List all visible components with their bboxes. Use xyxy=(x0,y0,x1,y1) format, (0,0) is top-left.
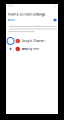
button[interactable]: Samsung Free xyxy=(6,45,58,53)
button[interactable]: Google Discover xyxy=(6,37,58,45)
staticText: Home screen settings xyxy=(7,11,45,17)
staticText: Swipe xyxy=(7,18,15,22)
staticText: ..ıl xyxy=(52,4,56,8)
staticText: Samsung Free xyxy=(21,47,39,51)
staticText: Google Discover xyxy=(21,39,44,43)
staticText: 9:41 xyxy=(7,4,14,8)
